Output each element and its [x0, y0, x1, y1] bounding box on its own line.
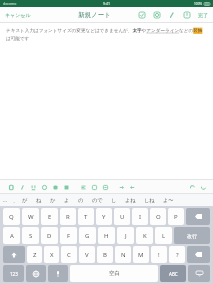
staticText: B: [103, 251, 107, 259]
button[interactable]: W: [22, 208, 39, 225]
button[interactable]: Indent increase: [116, 181, 127, 193]
button[interactable]: Done: [196, 10, 210, 20]
button[interactable]: P: [168, 208, 184, 225]
button[interactable]: Bulleted list: [89, 181, 100, 193]
staticText: 、: [13, 197, 18, 203]
button[interactable]: Switch language: [26, 265, 46, 282]
button[interactable]: 123: [3, 265, 24, 282]
button[interactable]: ね: [32, 195, 46, 206]
staticText: L: [162, 232, 166, 240]
button[interactable]: X: [44, 246, 59, 263]
button[interactable]: Checklist: [136, 9, 147, 20]
button[interactable]: Voice input: [48, 265, 68, 282]
button[interactable]: Underline: [28, 181, 39, 193]
button[interactable]: A: [3, 227, 20, 244]
button[interactable]: 改行: [174, 227, 210, 244]
staticText: J: [125, 232, 127, 240]
button[interactable]: し: [107, 195, 121, 206]
staticText: V: [85, 251, 89, 259]
button[interactable]: Highlight: [50, 181, 61, 193]
button[interactable]: Shift: [3, 246, 25, 263]
button[interactable]: Strikethrough: [39, 181, 50, 193]
staticText: D: [47, 232, 52, 240]
button[interactable]: O: [150, 208, 166, 225]
button[interactable]: しね: [140, 195, 159, 206]
staticText: W: [28, 213, 34, 221]
staticText: 改行: [187, 233, 197, 239]
staticText: ので: [92, 197, 103, 204]
staticText: の: [78, 197, 84, 204]
button[interactable]: Indent decrease: [127, 181, 138, 193]
staticText: か: [50, 197, 56, 204]
button[interactable]: Align left: [78, 181, 89, 193]
button[interactable]: T: [78, 208, 94, 225]
button[interactable]: H: [98, 227, 115, 244]
button[interactable]: か: [46, 195, 60, 206]
staticText: X: [50, 251, 54, 259]
staticText: O: [156, 213, 161, 221]
button[interactable]: M: [133, 246, 149, 263]
button[interactable]: ?: [169, 246, 185, 263]
button[interactable]: Q: [3, 208, 20, 225]
button[interactable]: Hide keyboard: [188, 265, 210, 282]
button[interactable]: Draw: [166, 9, 177, 20]
staticText: E: [48, 213, 52, 221]
button[interactable]: Bold: [6, 181, 17, 193]
staticText: S: [29, 232, 33, 240]
button[interactable]: B: [97, 246, 113, 263]
staticText: !: [158, 251, 160, 259]
button[interactable]: 空白: [70, 265, 158, 282]
button[interactable]: Backspace: [187, 246, 210, 263]
staticText: 123: [10, 271, 18, 277]
button[interactable]: よ〜: [159, 195, 178, 206]
button[interactable]: S: [22, 227, 39, 244]
staticText: ?: [176, 251, 179, 259]
button[interactable]: J: [117, 227, 134, 244]
button[interactable]: U: [114, 208, 130, 225]
staticText: G: [85, 232, 90, 240]
button[interactable]: Z: [27, 246, 42, 263]
button[interactable]: G: [79, 227, 96, 244]
button[interactable]: N: [115, 246, 131, 263]
staticText: 完了: [198, 12, 208, 18]
staticText: docomo: [3, 1, 17, 6]
staticText: Z: [33, 251, 37, 259]
button[interactable]: Redo: [198, 181, 209, 193]
staticText: A: [10, 232, 14, 240]
staticText: 9:41: [103, 1, 110, 6]
button[interactable]: ので: [88, 195, 107, 206]
button[interactable]: の: [74, 195, 88, 206]
staticText: M: [138, 251, 144, 259]
button[interactable]: Numbered list: [100, 181, 111, 193]
staticText: よ: [64, 197, 70, 204]
button[interactable]: Text color: [61, 181, 72, 193]
staticText: 100%: [194, 2, 203, 6]
button[interactable]: R: [60, 208, 76, 225]
button[interactable]: Camera: [151, 9, 162, 20]
staticText: し: [111, 197, 117, 204]
button[interactable]: ABC: [160, 265, 186, 282]
button[interactable]: I: [132, 208, 148, 225]
button[interactable]: よ: [60, 195, 74, 206]
staticText: テキスト入力はフォントサイズの変更などはできませんが、太字やアンダーラインなどの…: [6, 28, 207, 41]
button[interactable]: L: [155, 227, 172, 244]
staticText: P: [174, 213, 178, 221]
button[interactable]: よね: [121, 195, 140, 206]
staticText: よ〜: [163, 197, 174, 204]
staticText: K: [143, 232, 147, 240]
button[interactable]: Italic: [17, 181, 28, 193]
button[interactable]: キャンセル: [0, 9, 36, 21]
button[interactable]: !: [151, 246, 167, 263]
button[interactable]: Y: [96, 208, 112, 225]
button[interactable]: V: [79, 246, 95, 263]
button[interactable]: Backspace: [186, 208, 210, 225]
button[interactable]: C: [61, 246, 77, 263]
button[interactable]: F: [60, 227, 77, 244]
button[interactable]: E: [41, 208, 58, 225]
button[interactable]: Undo: [187, 181, 198, 193]
button[interactable]: D: [41, 227, 58, 244]
button[interactable]: Share: [181, 9, 192, 20]
staticText: N: [121, 251, 126, 259]
button[interactable]: K: [136, 227, 153, 244]
button[interactable]: が: [18, 195, 32, 206]
